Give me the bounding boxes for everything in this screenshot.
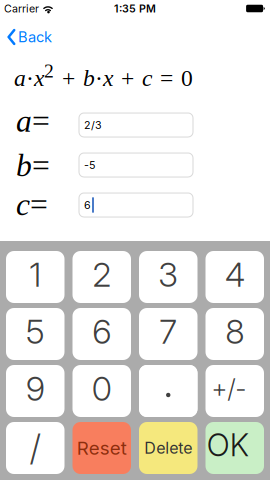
staticText: 8 [225,312,244,351]
staticText: 3 [158,255,178,294]
button[interactable]: 4 [205,251,264,303]
button[interactable]: 0 [72,365,131,417]
button[interactable]: Decimal point [139,365,197,417]
staticText: 6 [84,199,91,211]
staticText: 1 [29,255,41,294]
staticText: Reset [77,437,127,459]
staticText: 2/3 [84,119,102,131]
button[interactable]: 8 [205,308,264,360]
button[interactable]: 5 [6,308,64,360]
staticText: b= [16,148,50,182]
staticText: +/- [211,374,246,403]
staticText: -5 [84,159,95,171]
button[interactable]: 1 [6,251,64,303]
staticText: a·x2 + b·x + c = 0 [14,60,193,91]
button[interactable]: 2 [72,251,131,303]
staticText: / [30,428,41,468]
button[interactable]: 7 [139,308,197,360]
staticText: Carrier [4,2,39,15]
button[interactable]: a value [79,113,193,137]
staticText: 0 [92,369,112,408]
staticText: 9 [26,369,45,408]
button[interactable]: c value [79,193,193,217]
button[interactable]: 9 [6,365,64,417]
button[interactable]: +/- [205,365,264,417]
staticText: 5 [26,312,45,351]
button[interactable]: b value [79,153,193,177]
staticText: Delete [144,439,192,457]
staticText: 4 [225,255,245,294]
button[interactable]: 6 [72,308,131,360]
staticText: 1:35 PM [114,2,156,15]
staticText: OK [207,427,249,463]
staticText: a= [16,104,50,138]
button[interactable]: Reset [72,422,131,474]
staticText: 2 [92,255,111,294]
staticText: Back [18,28,52,46]
button[interactable]: 3 [139,251,197,303]
button[interactable]: OK [205,422,264,474]
button[interactable]: / [6,422,64,474]
staticText: 6 [92,312,111,351]
button[interactable]: Delete [139,422,197,474]
staticText: c= [16,187,48,221]
staticText: 7 [159,312,177,351]
button[interactable]: Back [7,28,52,46]
